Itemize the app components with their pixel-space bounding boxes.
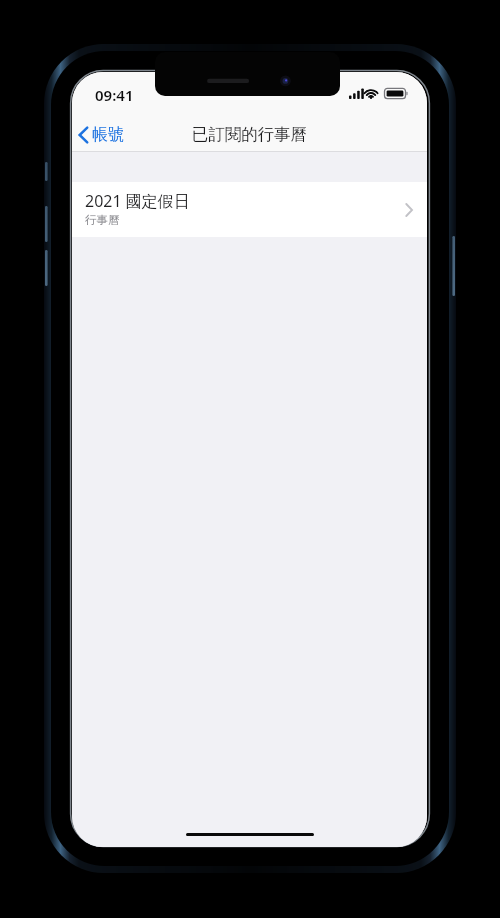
- button[interactable]: 帳號: [72, 117, 132, 152]
- button[interactable]: 2021 國定假日: [72, 182, 427, 237]
- staticText: 已訂閱的行事曆: [72, 124, 427, 145]
- other: Open calendar details: [405, 203, 413, 217]
- staticText: 2021 國定假日: [85, 190, 190, 212]
- staticText: 09:41: [95, 85, 134, 105]
- staticText: 行事曆: [85, 213, 120, 227]
- other: Home indicator: [186, 833, 314, 836]
- staticText: 帳號: [92, 125, 124, 145]
